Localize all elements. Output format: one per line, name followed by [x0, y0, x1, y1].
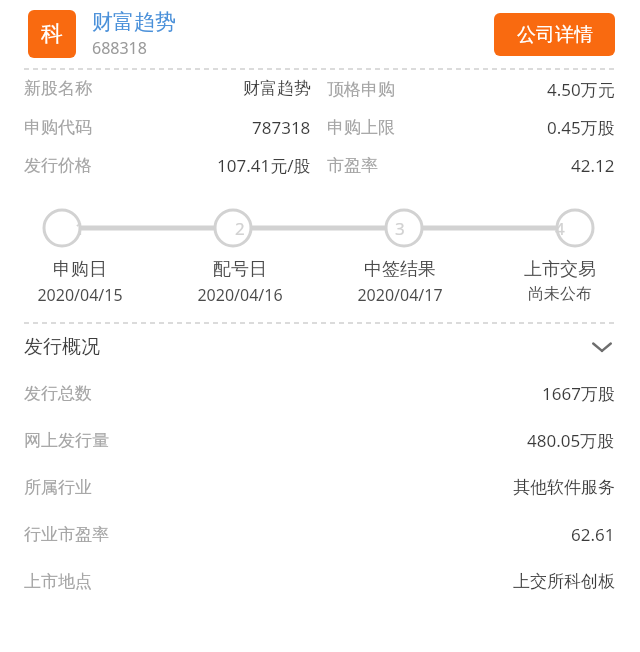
staticText: 市盈率 — [327, 155, 378, 176]
staticText: 3 — [395, 217, 405, 240]
staticText: 0.45万股 — [547, 116, 615, 139]
staticText: 2020/04/16 — [197, 284, 283, 306]
staticText: 网上发行量 — [24, 430, 109, 451]
button[interactable]: 所属行业 — [24, 464, 615, 511]
button[interactable]: 网上发行量 — [24, 417, 615, 464]
staticText: 1 — [75, 217, 85, 240]
staticText: 2 — [235, 217, 245, 240]
staticText: 顶格申购 — [327, 79, 395, 100]
button[interactable]: 上市地点 — [24, 558, 615, 605]
other: Collapse — [589, 334, 615, 360]
staticText: 科 — [41, 20, 63, 48]
staticText: 480.05万股 — [527, 429, 615, 452]
staticText: 行业市盈率 — [24, 524, 109, 545]
staticText: 所属行业 — [24, 477, 92, 498]
staticText: 1667万股 — [542, 382, 615, 405]
staticText: 财富趋势 — [92, 9, 176, 35]
staticText: 62.61 — [571, 523, 615, 546]
staticText: 公司详情 — [517, 23, 593, 47]
button[interactable]: 公司详情 — [494, 13, 615, 56]
staticText: 财富趋势 — [243, 78, 311, 99]
staticText: 42.12 — [571, 154, 615, 177]
staticText: 发行总数 — [24, 383, 92, 404]
button[interactable]: 行业市盈率 — [24, 511, 615, 558]
staticText: 4.50万元 — [547, 78, 615, 101]
staticText: 2020/04/17 — [357, 284, 443, 306]
staticText: 787318 — [252, 116, 311, 139]
staticText: 尚未公布 — [528, 284, 592, 304]
staticText: 上市地点 — [24, 571, 92, 592]
staticText: 申购日 — [53, 258, 107, 281]
staticText: 发行价格 — [24, 155, 92, 176]
staticText: 新股名称 — [24, 78, 92, 99]
staticText: 其他软件服务 — [513, 477, 615, 498]
staticText: 上市交易 — [524, 258, 596, 281]
staticText: 配号日 — [213, 258, 267, 281]
staticText: 申购上限 — [327, 117, 395, 138]
staticText: 中签结果 — [364, 258, 436, 281]
staticText: 上交所科创板 — [513, 571, 615, 592]
button[interactable]: 发行总数 — [24, 370, 615, 417]
staticText: 申购代码 — [24, 117, 92, 138]
staticText: 2020/04/15 — [37, 284, 123, 306]
staticText: 107.41元/股 — [217, 154, 311, 177]
staticText: 4 — [555, 217, 565, 240]
staticText: 发行概况 — [24, 335, 100, 359]
button[interactable]: 发行概况 — [24, 324, 615, 370]
staticText: 688318 — [92, 37, 147, 59]
